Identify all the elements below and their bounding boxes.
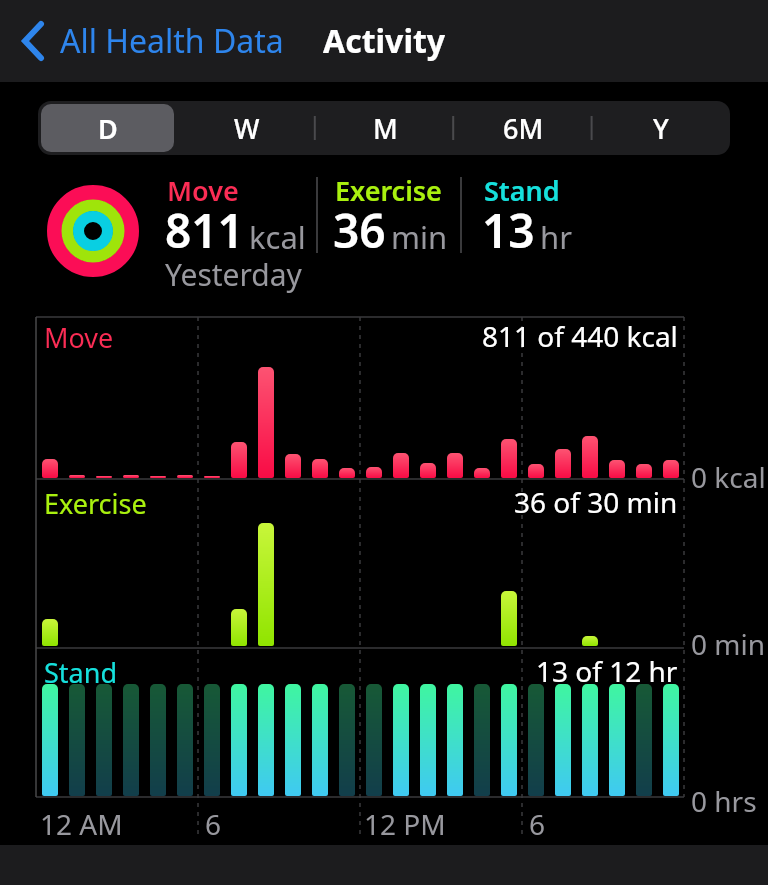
staticText: D [98,110,118,147]
staticText: 13 of 12 hr [536,652,678,690]
button[interactable]: D [38,101,177,155]
staticText: 6 [205,805,222,843]
staticText: 811 of 440 kcal [482,317,678,355]
staticText: 36 [333,199,386,262]
button[interactable]: 6M [454,101,592,155]
staticText: Yesterday [165,254,302,295]
staticText: 811 [165,199,244,262]
staticText: 36 of 30 min [514,483,678,521]
button[interactable]: Y [592,101,730,155]
staticText: Move [44,319,114,356]
staticText: Y [653,110,669,147]
staticText: kcal [249,216,306,258]
staticText: min [391,216,448,258]
staticText: 12 PM [364,805,446,843]
staticText: Activity [323,19,446,63]
staticText: Stand [44,654,118,691]
staticText: Stand [484,172,560,209]
staticText: Exercise [335,172,442,209]
staticText: 6 [529,805,546,843]
button[interactable]: W [177,101,316,155]
staticText: All Health Data [60,19,284,63]
staticText: Move [167,172,239,209]
staticText: 6M [503,110,544,147]
staticText: hr [540,216,572,258]
staticText: 13 [482,199,535,262]
staticText: M [373,110,398,147]
staticText: 0 hrs [691,782,757,820]
staticText: Exercise [44,485,147,522]
button[interactable]: All Health Data [20,19,284,63]
staticText: 12 AM [40,805,123,843]
staticText: 0 kcal [691,458,766,496]
staticText: 0 min [691,625,766,663]
button[interactable]: M [316,101,454,155]
staticText: W [234,110,260,147]
